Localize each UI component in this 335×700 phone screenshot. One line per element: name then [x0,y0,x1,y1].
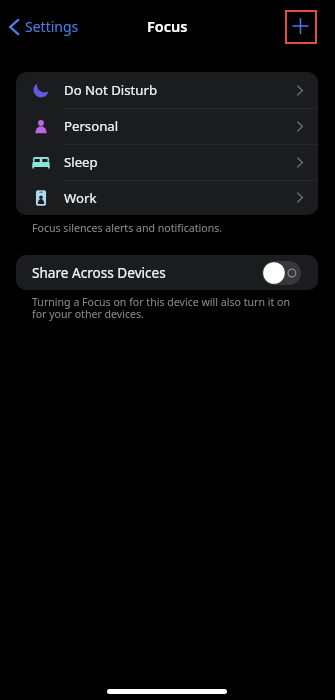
staticText: Turning a Focus on for this device will … [32,295,290,322]
button[interactable]: Work [16,180,318,215]
button[interactable]: Personal [16,108,318,144]
button[interactable]: Sleep [16,144,318,180]
staticText: Share Across Devices [32,263,166,282]
staticText: Focus [147,16,188,36]
staticText: Do Not Disturb [64,81,158,99]
button[interactable]: Add Focus [285,10,317,44]
button[interactable]: Share Across Devices [16,255,318,290]
staticText: Settings [25,17,79,36]
staticText: Personal [64,117,119,135]
button[interactable]: Settings [0,11,87,42]
staticText: Sleep [64,153,98,171]
staticText: Focus silences alerts and notifications. [32,221,223,235]
button[interactable]: Do Not Disturb [16,72,318,108]
staticText: Work [64,189,97,207]
